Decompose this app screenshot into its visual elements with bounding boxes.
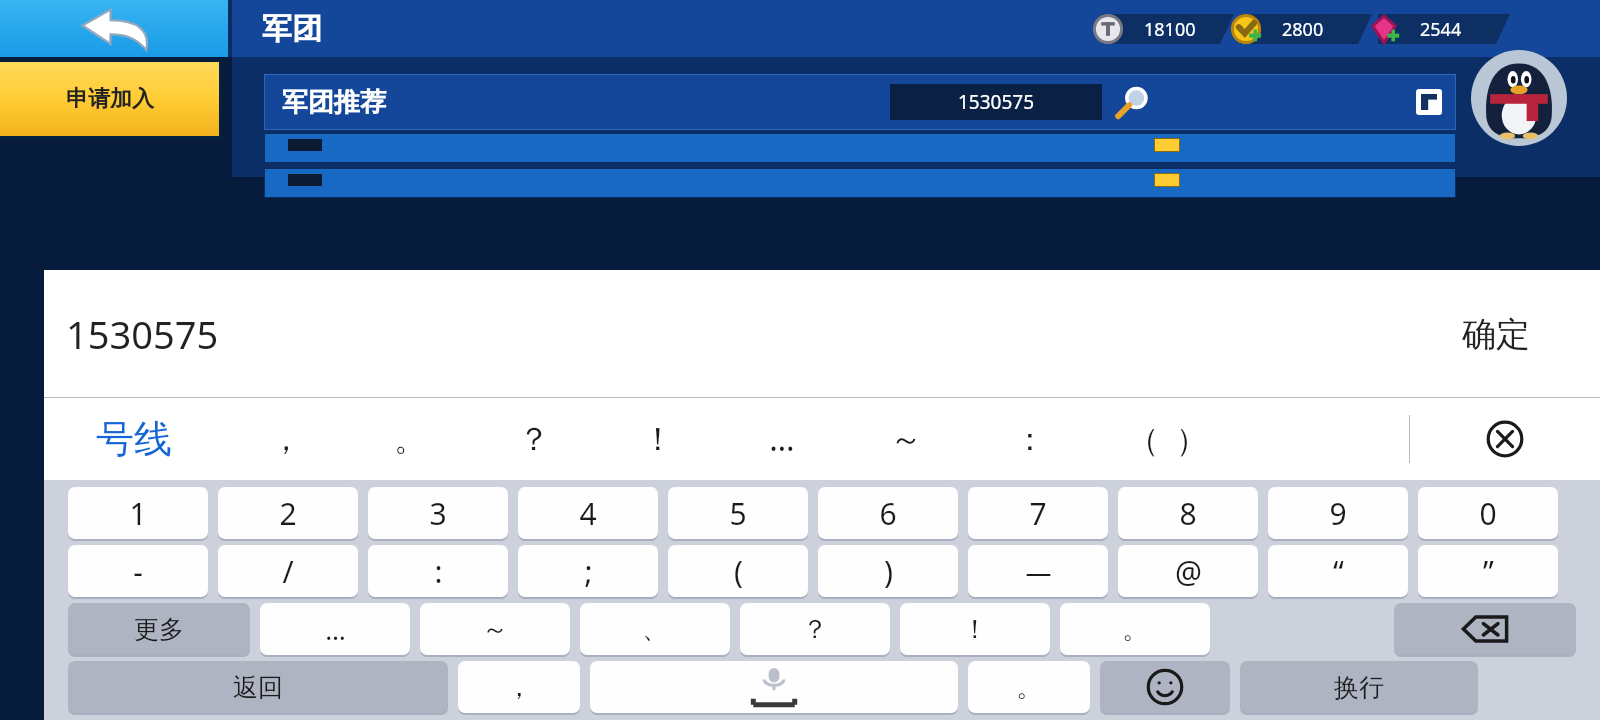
staticText: :: [434, 551, 443, 592]
staticText: 。: [1122, 613, 1148, 646]
button[interactable]: 7: [968, 487, 1108, 539]
staticText: ～: [890, 419, 922, 459]
button[interactable]: ): [818, 545, 958, 597]
button[interactable]: 、: [580, 603, 730, 655]
staticText: ！: [642, 419, 674, 459]
staticText: 8: [1179, 493, 1197, 534]
button[interactable]: ？: [472, 398, 596, 480]
button[interactable]: （ ）: [1092, 398, 1242, 480]
button[interactable]: “: [1268, 545, 1408, 597]
button[interactable]: [1100, 661, 1230, 713]
button[interactable]: 3: [368, 487, 508, 539]
button[interactable]: 。: [968, 661, 1090, 713]
staticText: …: [325, 612, 346, 647]
staticText: ，: [506, 671, 532, 704]
button[interactable]: :: [368, 545, 508, 597]
staticText: …: [769, 417, 795, 461]
button[interactable]: ，: [458, 661, 580, 713]
button[interactable]: 6: [818, 487, 958, 539]
button[interactable]: …: [720, 398, 844, 480]
other: Space: [590, 661, 958, 713]
button[interactable]: (: [668, 545, 808, 597]
button[interactable]: 1: [68, 487, 208, 539]
button[interactable]: —: [968, 545, 1108, 597]
staticText: 9: [1329, 493, 1347, 534]
button[interactable]: ！: [596, 398, 720, 480]
button[interactable]: ～: [420, 603, 570, 655]
staticText: “: [1333, 551, 1344, 592]
button[interactable]: 确定: [1462, 313, 1530, 356]
staticText: 号线: [96, 415, 172, 463]
button[interactable]: 。: [348, 398, 472, 480]
staticText: ): [884, 551, 893, 592]
staticText: 军团: [262, 10, 322, 48]
staticText: 7: [1029, 493, 1047, 534]
button[interactable]: 换行: [1240, 661, 1478, 713]
staticText: 2544: [1420, 17, 1462, 42]
staticText: (: [734, 551, 743, 592]
staticText: ;: [584, 551, 593, 592]
button[interactable]: [1394, 603, 1576, 655]
button[interactable]: …: [260, 603, 410, 655]
staticText: 1530575: [958, 89, 1035, 115]
staticText: ：: [1014, 419, 1046, 459]
button[interactable]: ！: [900, 603, 1050, 655]
staticText: 2800: [1282, 17, 1324, 42]
button[interactable]: Search: [1114, 82, 1154, 122]
button[interactable]: 0: [1418, 487, 1558, 539]
button[interactable]: ;: [518, 545, 658, 597]
other: Emoji: [1100, 661, 1230, 713]
button[interactable]: ？: [740, 603, 890, 655]
button[interactable]: 申请加入: [0, 62, 219, 136]
staticText: 0: [1479, 493, 1497, 534]
staticText: 6: [879, 493, 897, 534]
staticText: 、: [642, 613, 668, 646]
staticText: 换行: [1334, 672, 1384, 703]
staticText: 2: [279, 493, 297, 534]
staticText: 返回: [233, 672, 283, 703]
staticText: 确定: [1462, 313, 1530, 356]
staticText: 。: [394, 419, 426, 459]
staticText: 18100: [1144, 17, 1196, 42]
button[interactable]: 5: [668, 487, 808, 539]
staticText: /: [282, 551, 294, 592]
button[interactable]: [590, 661, 958, 713]
staticText: 军团推荐: [282, 86, 386, 119]
button[interactable]: 2: [218, 487, 358, 539]
button[interactable]: [264, 168, 1456, 198]
button[interactable]: 更多: [68, 603, 250, 655]
staticText: 更多: [134, 614, 184, 645]
button[interactable]: /: [218, 545, 358, 597]
staticText: 1: [129, 493, 147, 534]
button[interactable]: 9: [1268, 487, 1408, 539]
staticText: ，: [270, 419, 302, 459]
button[interactable]: Clear: [1410, 398, 1600, 480]
button[interactable]: @: [1118, 545, 1258, 597]
staticText: ？: [802, 613, 828, 646]
button[interactable]: Back: [0, 0, 228, 57]
staticText: 1530575: [66, 308, 219, 360]
staticText: 5: [729, 493, 747, 534]
button[interactable]: 4: [518, 487, 658, 539]
button[interactable]: Profile: [1471, 50, 1567, 146]
button[interactable]: 1530575: [890, 84, 1102, 120]
staticText: ？: [518, 419, 550, 459]
button[interactable]: Refresh: [1416, 89, 1442, 115]
staticText: —: [1025, 554, 1052, 589]
button[interactable]: 8: [1118, 487, 1258, 539]
staticText: @: [1175, 551, 1202, 592]
staticText: 4: [579, 493, 597, 534]
button[interactable]: ”: [1418, 545, 1558, 597]
staticText: 3: [429, 493, 447, 534]
other: Backspace: [1394, 603, 1576, 655]
staticText: （ ）: [1127, 417, 1208, 461]
button[interactable]: ，: [224, 398, 348, 480]
button[interactable]: [264, 133, 1456, 163]
button[interactable]: -: [68, 545, 208, 597]
button[interactable]: 号线: [44, 398, 224, 480]
button[interactable]: 。: [1060, 603, 1210, 655]
button[interactable]: ：: [968, 398, 1092, 480]
button[interactable]: 返回: [68, 661, 448, 713]
staticText: 申请加入: [66, 85, 154, 113]
button[interactable]: ～: [844, 398, 968, 480]
